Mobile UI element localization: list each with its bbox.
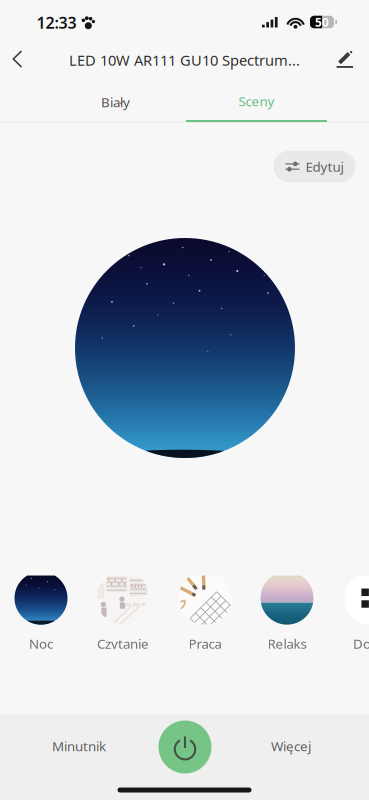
staticText: Czytanie	[97, 635, 149, 652]
staticText: Więcej	[271, 737, 311, 755]
staticText: 50	[315, 14, 329, 30]
button[interactable]: Relaks	[247, 572, 327, 652]
button[interactable]: Minutnik	[14, 715, 144, 777]
staticText: Dodaj	[353, 635, 369, 652]
staticText: Relaks	[267, 635, 306, 652]
button[interactable]: Sceny	[186, 82, 327, 122]
button[interactable]: Czytanie	[83, 572, 163, 652]
button[interactable]: Noc	[1, 572, 81, 652]
button[interactable]: Edytuj	[273, 151, 355, 182]
staticText: Noc	[29, 635, 53, 652]
button[interactable]: Power	[158, 720, 211, 773]
staticText: Sceny	[238, 92, 274, 110]
staticText: LED 10W AR111 GU10 Spectrum...	[69, 50, 300, 70]
button[interactable]: Więcej	[226, 715, 356, 777]
button[interactable]: Dodaj	[331, 572, 369, 652]
staticText: Edytuj	[305, 158, 343, 175]
staticText: Minutnik	[52, 737, 106, 755]
button[interactable]: Back	[0, 39, 37, 79]
button[interactable]: Edit	[325, 39, 365, 79]
staticText: Praca	[188, 635, 221, 652]
button[interactable]: Biały	[45, 82, 186, 122]
staticText: Biały	[101, 93, 130, 111]
button[interactable]: Praca	[165, 572, 245, 652]
staticText: 12:33	[36, 12, 76, 33]
